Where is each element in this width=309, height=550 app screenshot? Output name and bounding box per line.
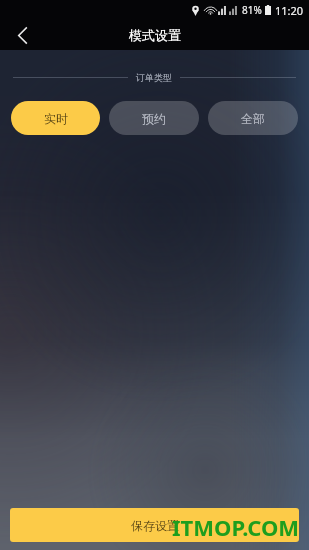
staticText: 模式设置 [129,27,181,43]
staticText: 81% [242,3,262,17]
button[interactable]: Back [0,20,44,50]
button[interactable]: 保存设置 [10,508,299,542]
staticText: 保存设置 [131,518,179,533]
button[interactable]: 实时 [11,101,100,135]
button[interactable]: 预约 [109,101,199,135]
staticText: 11:20 [275,3,304,18]
staticText: 实时 [44,111,68,126]
staticText: ITMOP.COM [172,512,300,542]
staticText: 预约 [142,111,166,126]
button[interactable]: 全部 [208,101,298,135]
staticText: 订单类型 [136,72,172,83]
staticText: 全部 [241,111,265,126]
